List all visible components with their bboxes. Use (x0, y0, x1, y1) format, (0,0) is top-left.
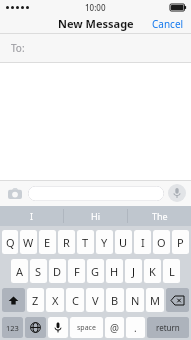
button[interactable]: return (147, 317, 189, 338)
button[interactable]: H (106, 259, 123, 283)
button[interactable]: Z (27, 288, 44, 312)
staticText: B (111, 293, 119, 308)
staticText: N (131, 293, 140, 308)
staticText: space (77, 323, 96, 333)
staticText: Q (6, 235, 15, 250)
button[interactable]: space (70, 317, 103, 338)
staticText: H (110, 264, 119, 279)
staticText: Y (101, 235, 108, 250)
button[interactable]: A (11, 259, 28, 283)
staticText: Z (32, 293, 39, 308)
staticText: I (141, 235, 145, 250)
staticText: Cancel (152, 17, 184, 31)
staticText: F (74, 264, 80, 279)
staticText: G (91, 264, 100, 279)
staticText: D (53, 264, 62, 279)
staticText: E (44, 235, 51, 250)
button[interactable]: B (106, 288, 124, 312)
button[interactable]: Backspace (166, 288, 189, 312)
button[interactable]: N (126, 288, 144, 312)
staticText: @ (110, 321, 119, 335)
button[interactable]: O (153, 230, 170, 254)
button[interactable]: E (39, 230, 56, 254)
staticText: New Message (58, 16, 134, 31)
button[interactable]: Y (96, 230, 113, 254)
staticText: U (119, 235, 128, 250)
staticText: To: (11, 41, 25, 55)
button[interactable]: Change keyboard (25, 317, 46, 338)
button[interactable]: M (146, 288, 164, 312)
button[interactable]: Dictation (48, 317, 68, 338)
button[interactable] (28, 186, 164, 201)
button[interactable]: G (87, 259, 104, 283)
button[interactable]: U (115, 230, 132, 254)
button[interactable]: F (68, 259, 85, 283)
button[interactable]: V (86, 288, 104, 312)
staticText: K (149, 264, 156, 279)
staticText: P (177, 235, 184, 250)
button[interactable]: I (134, 230, 151, 254)
button[interactable]: To: (0, 34, 191, 62)
staticText: Hi (91, 210, 100, 222)
staticText: The (152, 210, 168, 222)
button[interactable]: Cancel (145, 14, 191, 33)
staticText: O (157, 235, 166, 250)
staticText: I (30, 210, 34, 222)
button[interactable]: Camera (5, 183, 25, 203)
button[interactable]: Hi (64, 206, 127, 226)
button[interactable]: C (66, 288, 84, 312)
staticText: . (134, 321, 137, 335)
staticText: L (169, 264, 175, 279)
button[interactable]: S (30, 259, 47, 283)
button[interactable]: I (0, 206, 63, 226)
staticText: W (23, 235, 34, 250)
button[interactable]: T (77, 230, 94, 254)
button[interactable]: . (126, 317, 145, 338)
button[interactable]: P (172, 230, 189, 254)
staticText: 123 (6, 323, 19, 333)
staticText: 10:00 (85, 2, 106, 13)
staticText: return (156, 322, 180, 333)
staticText: C (72, 293, 79, 308)
button[interactable]: The (128, 206, 191, 226)
button[interactable]: 123 (2, 317, 23, 338)
button[interactable]: R (58, 230, 75, 254)
staticText: T (82, 235, 89, 250)
button[interactable]: K (144, 259, 161, 283)
staticText: A (16, 264, 24, 279)
button[interactable]: J (125, 259, 142, 283)
staticText: M (150, 293, 160, 308)
button[interactable]: Shift (2, 288, 25, 312)
staticText: X (52, 293, 59, 308)
button[interactable]: L (163, 259, 180, 283)
button[interactable]: X (46, 288, 64, 312)
staticText: V (92, 293, 99, 308)
button[interactable]: Q (2, 230, 18, 254)
staticText: S (35, 264, 42, 279)
button[interactable]: W (20, 230, 37, 254)
button[interactable]: @ (105, 317, 124, 338)
button[interactable]: D (49, 259, 66, 283)
staticText: R (63, 235, 70, 250)
staticText: J (132, 264, 136, 279)
button[interactable]: Record audio (168, 184, 186, 202)
